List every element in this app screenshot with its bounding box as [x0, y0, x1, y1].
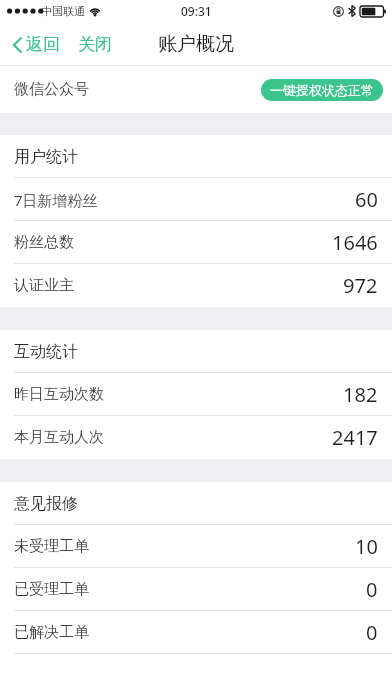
button[interactable]: 返回: [8, 30, 64, 59]
button[interactable]: 已受理工单: [0, 568, 392, 611]
staticText: 972: [343, 272, 378, 299]
button[interactable]: 粉丝总数: [0, 221, 392, 264]
button[interactable]: 微信公众号: [0, 66, 392, 113]
staticText: 互动统计: [14, 342, 78, 362]
button[interactable]: 7日新增粉丝: [0, 178, 392, 221]
staticText: 60: [355, 186, 378, 213]
staticText: 认证业主: [14, 276, 74, 295]
staticText: 0: [366, 619, 378, 646]
staticText: 粉丝总数: [14, 233, 74, 252]
staticText: 已受理工单: [14, 580, 89, 599]
button[interactable]: 已解决工单: [0, 611, 392, 654]
staticText: 未受理工单: [14, 537, 89, 556]
staticText: 关闭: [78, 34, 112, 55]
staticText: 1646: [332, 229, 378, 256]
button[interactable]: 本月互动人次: [0, 416, 392, 459]
button[interactable]: 一键授权状态正常: [261, 79, 383, 101]
staticText: 意见报修: [14, 494, 78, 514]
staticText: 10: [355, 533, 378, 560]
staticText: 已解决工单: [14, 623, 89, 642]
staticText: 7日新增粉丝: [14, 190, 98, 210]
staticText: 本月互动人次: [14, 428, 104, 447]
staticText: 182: [343, 381, 378, 408]
staticText: 2417: [332, 424, 378, 451]
button[interactable]: 昨日互动次数: [0, 373, 392, 416]
staticText: 用户统计: [14, 147, 78, 167]
staticText: 一键授权状态正常: [270, 82, 374, 98]
staticText: 返回: [26, 34, 60, 55]
staticText: 09:31: [181, 3, 212, 19]
staticText: 昨日互动次数: [14, 385, 104, 404]
staticText: 微信公众号: [14, 80, 89, 99]
button[interactable]: 关闭: [74, 30, 116, 59]
button[interactable]: 认证业主: [0, 264, 392, 307]
button[interactable]: 未受理工单: [0, 525, 392, 568]
staticText: 账户概况: [158, 32, 234, 56]
staticText: 中国联通: [41, 4, 85, 18]
staticText: 0: [366, 576, 378, 603]
